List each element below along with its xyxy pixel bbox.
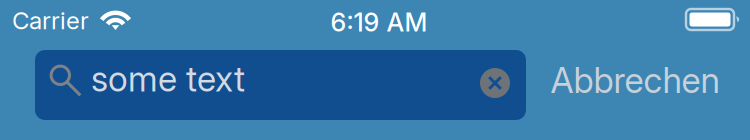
button[interactable]: Abbrechen — [543, 46, 727, 115]
staticText: some text — [91, 58, 245, 100]
button[interactable]: Clear text — [472, 60, 518, 106]
staticText: Abbrechen — [550, 59, 719, 101]
staticText: 6:19 AM — [330, 7, 427, 38]
staticText: Carrier — [12, 6, 89, 35]
